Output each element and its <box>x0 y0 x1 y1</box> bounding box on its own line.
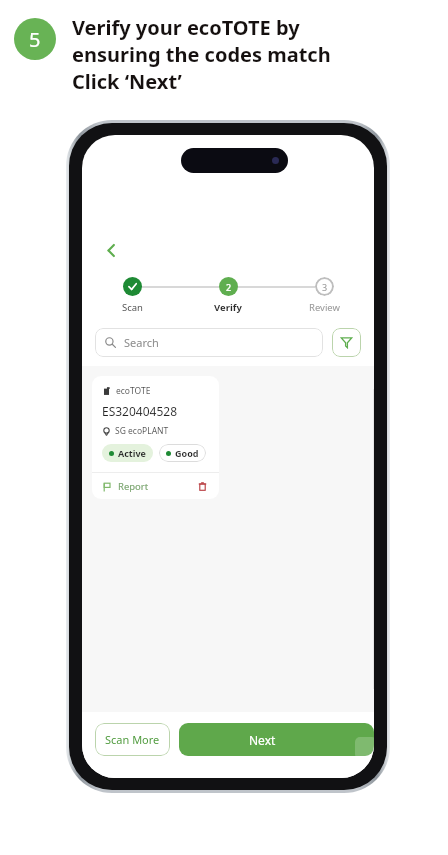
button[interactable]: 3 <box>296 277 352 314</box>
staticText: 3 <box>322 281 328 293</box>
staticText: ensuring the codes match <box>72 41 331 68</box>
staticText: Scan <box>122 301 143 314</box>
button[interactable]: Active <box>102 444 153 462</box>
staticText: ecoTOTE <box>116 385 151 397</box>
staticText: Good <box>175 447 199 459</box>
staticText: Search <box>124 335 159 350</box>
button[interactable]: Good <box>159 444 206 462</box>
staticText: Verify <box>214 301 242 314</box>
staticText: 5 <box>29 26 41 53</box>
button[interactable]: Search <box>95 328 323 357</box>
staticText: Report <box>118 480 149 493</box>
button[interactable]: Filter <box>332 328 361 357</box>
staticText: ES320404528 <box>102 403 178 419</box>
staticText: Next <box>249 732 276 748</box>
button[interactable]: 2 <box>200 277 256 314</box>
staticText: Click ‘Next’ <box>72 68 182 95</box>
button[interactable]: Report <box>102 480 149 493</box>
staticText: Scan More <box>105 732 160 747</box>
button[interactable]: Scan <box>104 277 160 314</box>
button[interactable]: Back <box>96 235 126 265</box>
button[interactable]: Next <box>179 723 374 756</box>
staticText: 2 <box>226 281 232 293</box>
button[interactable]: Delete <box>195 479 209 493</box>
staticText: SG ecoPLANT <box>115 425 169 437</box>
staticText: Verify your ecoTOTE by <box>72 14 300 41</box>
button[interactable]: ecoTOTE <box>92 376 219 499</box>
staticText: Review <box>309 301 340 314</box>
staticText: Active <box>118 447 146 459</box>
button[interactable]: Scan More <box>95 723 170 756</box>
